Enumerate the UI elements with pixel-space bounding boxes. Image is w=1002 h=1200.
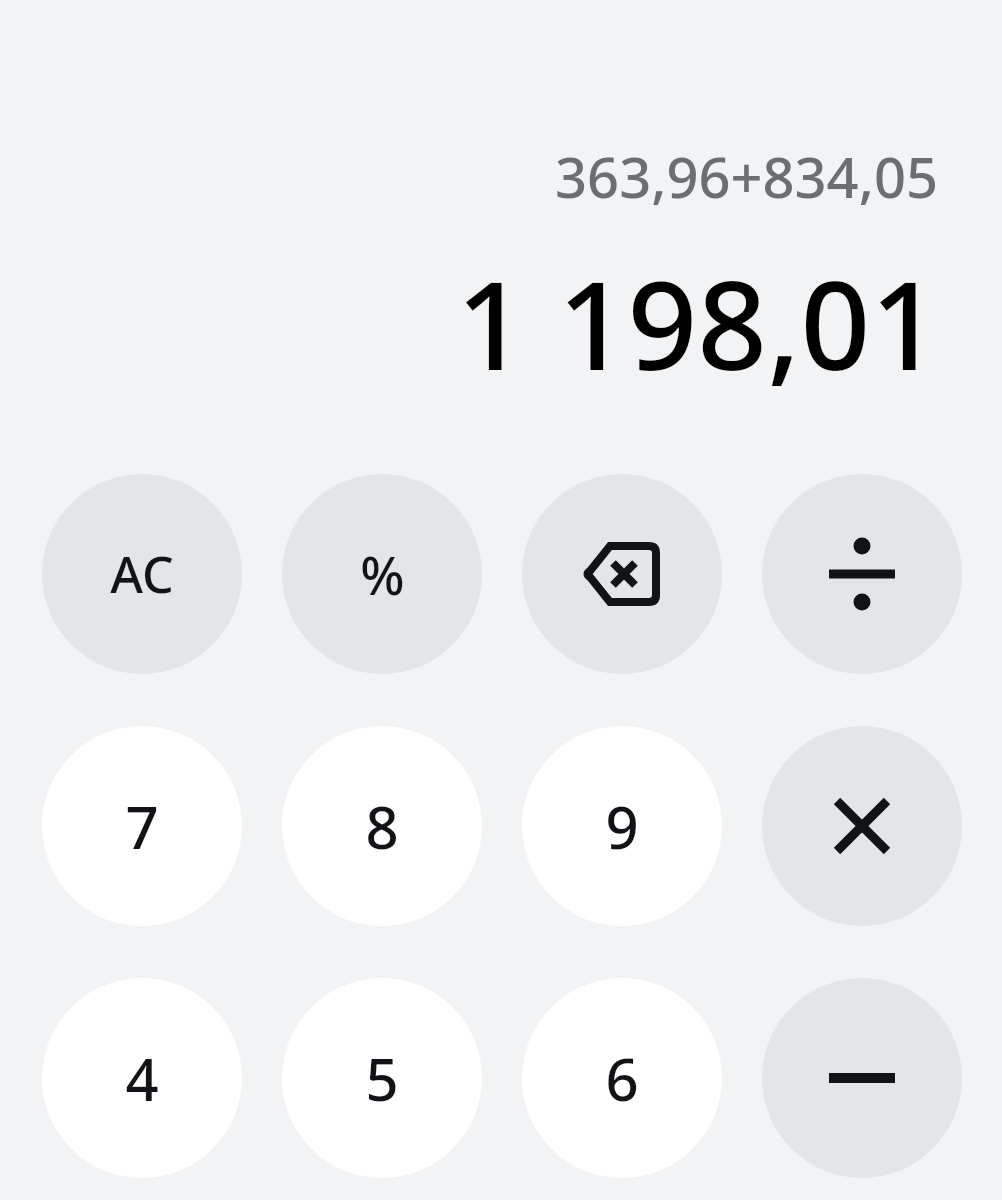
staticText: 8 — [365, 787, 399, 866]
button[interactable]: 9 — [522, 726, 722, 926]
button[interactable]: Divide — [762, 474, 962, 674]
button[interactable]: Multiply — [762, 726, 962, 926]
staticText: AC — [110, 540, 174, 608]
staticText: 363,96+834,05 — [0, 138, 938, 214]
button[interactable]: 4 — [42, 978, 242, 1178]
staticText: 4 — [125, 1039, 159, 1118]
staticText: 7 — [125, 787, 159, 866]
button[interactable]: Backspace — [522, 474, 722, 674]
button[interactable]: 6 — [522, 978, 722, 1178]
button[interactable]: Subtract — [762, 978, 962, 1178]
staticText: 6 — [605, 1039, 639, 1118]
staticText: 5 — [365, 1039, 399, 1118]
staticText: 1 198,01 — [0, 240, 940, 406]
button[interactable]: 7 — [42, 726, 242, 926]
button[interactable]: % — [282, 474, 482, 674]
button[interactable]: 8 — [282, 726, 482, 926]
staticText: % — [360, 539, 405, 610]
staticText: 9 — [605, 787, 639, 866]
button[interactable]: 5 — [282, 978, 482, 1178]
button[interactable]: AC — [42, 474, 242, 674]
